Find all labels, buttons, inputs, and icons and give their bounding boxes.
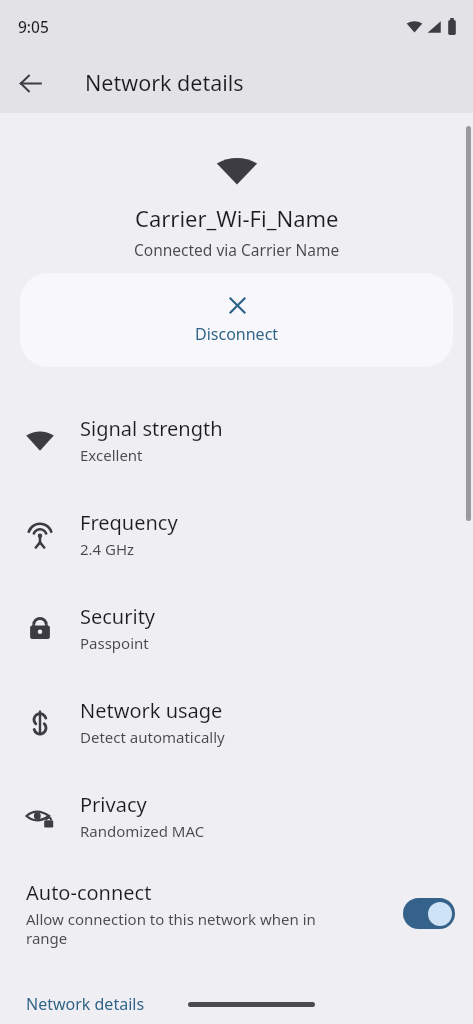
staticText: Excellent <box>80 445 143 465</box>
button[interactable]: Frequency <box>0 487 473 581</box>
staticText: Disconnect <box>195 323 279 345</box>
staticText: Frequency <box>80 509 178 536</box>
button[interactable]: Privacy <box>0 769 473 863</box>
staticText: Allow connection to this network when in… <box>26 909 326 948</box>
staticText: Signal strength <box>80 415 223 442</box>
button[interactable]: Auto-connect <box>26 879 455 948</box>
button[interactable]: Disconnect <box>20 273 453 367</box>
button[interactable]: Security <box>0 581 473 675</box>
staticText: Carrier_Wi-Fi_Name <box>135 203 339 233</box>
staticText: 9:05 <box>18 16 49 37</box>
staticText: Security <box>80 603 156 630</box>
button[interactable]: Back <box>8 61 52 105</box>
staticText: Network details <box>85 68 244 97</box>
staticText: Passpoint <box>80 633 149 653</box>
button[interactable]: Network usage <box>0 675 473 769</box>
staticText: 2.4 GHz <box>80 539 135 559</box>
staticText: Network usage <box>80 697 223 724</box>
button[interactable]: Signal strength <box>0 393 473 487</box>
staticText: Connected via Carrier Name <box>134 239 340 260</box>
staticText: Network details <box>26 993 145 1015</box>
staticText: Auto-connect <box>26 879 152 906</box>
staticText: Randomized MAC <box>80 821 205 841</box>
staticText: Privacy <box>80 791 147 818</box>
button[interactable]: Auto-connect toggle <box>403 898 455 929</box>
staticText: Detect automatically <box>80 727 225 747</box>
